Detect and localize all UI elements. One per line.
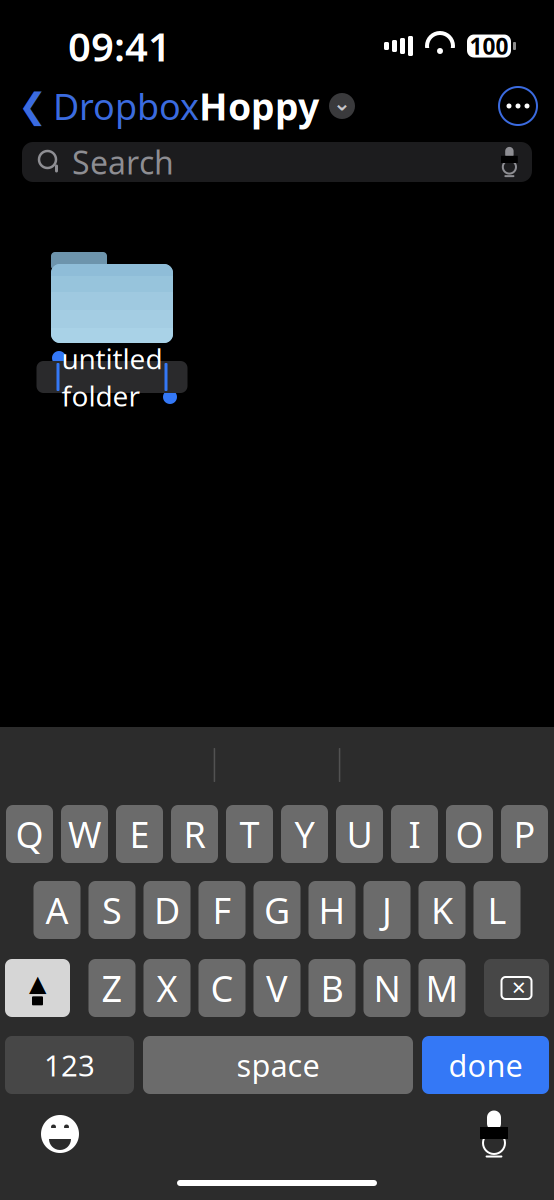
staticText: G <box>264 886 290 934</box>
button[interactable]: R <box>171 805 218 863</box>
staticText: 123 <box>44 1045 95 1084</box>
staticText: A <box>45 886 68 934</box>
staticText: Dropbox <box>53 82 199 130</box>
staticText: 100 <box>469 31 508 61</box>
staticText: B <box>320 964 343 1012</box>
button[interactable]: O <box>446 805 493 863</box>
staticText: T <box>239 810 259 858</box>
staticText: X <box>156 964 177 1012</box>
button[interactable]: P <box>501 805 548 863</box>
button[interactable]: D <box>143 881 190 939</box>
button[interactable]: Q <box>6 805 53 863</box>
staticText: E <box>129 810 149 858</box>
button[interactable]: Emoji <box>34 1108 86 1160</box>
staticText: K <box>431 886 453 934</box>
button[interactable]: H <box>308 881 355 939</box>
staticText: J <box>382 886 392 934</box>
staticText: ▲ <box>29 971 46 996</box>
staticText: untitled folder <box>61 340 162 414</box>
staticText: done <box>448 1045 522 1085</box>
staticText: space <box>236 1045 319 1085</box>
staticText: Search <box>72 141 174 183</box>
button[interactable]: Delete <box>484 959 549 1017</box>
button[interactable]: V <box>253 959 300 1017</box>
staticText: U <box>346 810 372 858</box>
staticText: C <box>210 964 233 1012</box>
button[interactable]: M <box>418 959 465 1017</box>
button[interactable]: ❮ <box>12 76 205 136</box>
button[interactable]: Search <box>22 142 532 182</box>
button[interactable]: 123 <box>5 1036 134 1094</box>
button[interactable]: E <box>116 805 163 863</box>
staticText: O <box>455 810 483 858</box>
button[interactable]: X <box>143 959 190 1017</box>
button[interactable]: F <box>198 881 245 939</box>
staticText: ❮ <box>18 86 47 126</box>
staticText: 09:41 <box>68 19 171 72</box>
button[interactable]: K <box>418 881 465 939</box>
button[interactable]: done <box>422 1036 549 1094</box>
button[interactable]: space <box>143 1036 413 1094</box>
button[interactable]: More options <box>496 84 540 128</box>
button[interactable]: S <box>88 881 135 939</box>
button[interactable]: Dictation <box>468 1108 520 1160</box>
button[interactable]: N <box>363 959 410 1017</box>
staticText: H <box>318 886 345 934</box>
button[interactable]: A <box>33 881 80 939</box>
staticText: Z <box>101 964 122 1012</box>
button[interactable]: T <box>226 805 273 863</box>
staticText: M <box>425 964 458 1012</box>
staticText: Q <box>15 810 43 858</box>
staticText: P <box>513 810 535 858</box>
button[interactable]: W <box>61 805 108 863</box>
button[interactable]: L <box>473 881 520 939</box>
staticText: F <box>212 886 231 934</box>
staticText: N <box>373 964 400 1012</box>
button[interactable]: Shift <box>5 959 70 1017</box>
button[interactable]: Folder options <box>329 91 355 121</box>
button[interactable]: B <box>308 959 355 1017</box>
button[interactable]: G <box>253 881 300 939</box>
staticText: ⌄ <box>333 91 351 115</box>
staticText: W <box>68 810 101 858</box>
staticText: S <box>102 886 122 934</box>
button[interactable]: U <box>336 805 383 863</box>
staticText: R <box>183 810 205 858</box>
staticText: V <box>266 964 288 1012</box>
button[interactable]: I <box>391 805 438 863</box>
staticText: D <box>154 886 180 934</box>
button[interactable]: Y <box>281 805 328 863</box>
button[interactable]: Z <box>88 959 135 1017</box>
staticText: L <box>487 886 506 934</box>
button[interactable]: J <box>363 881 410 939</box>
button[interactable]: C <box>198 959 245 1017</box>
staticText: ✕ <box>511 977 527 999</box>
staticText: Hoppy <box>199 81 319 131</box>
staticText: I <box>408 810 420 858</box>
staticText: Y <box>294 810 314 858</box>
